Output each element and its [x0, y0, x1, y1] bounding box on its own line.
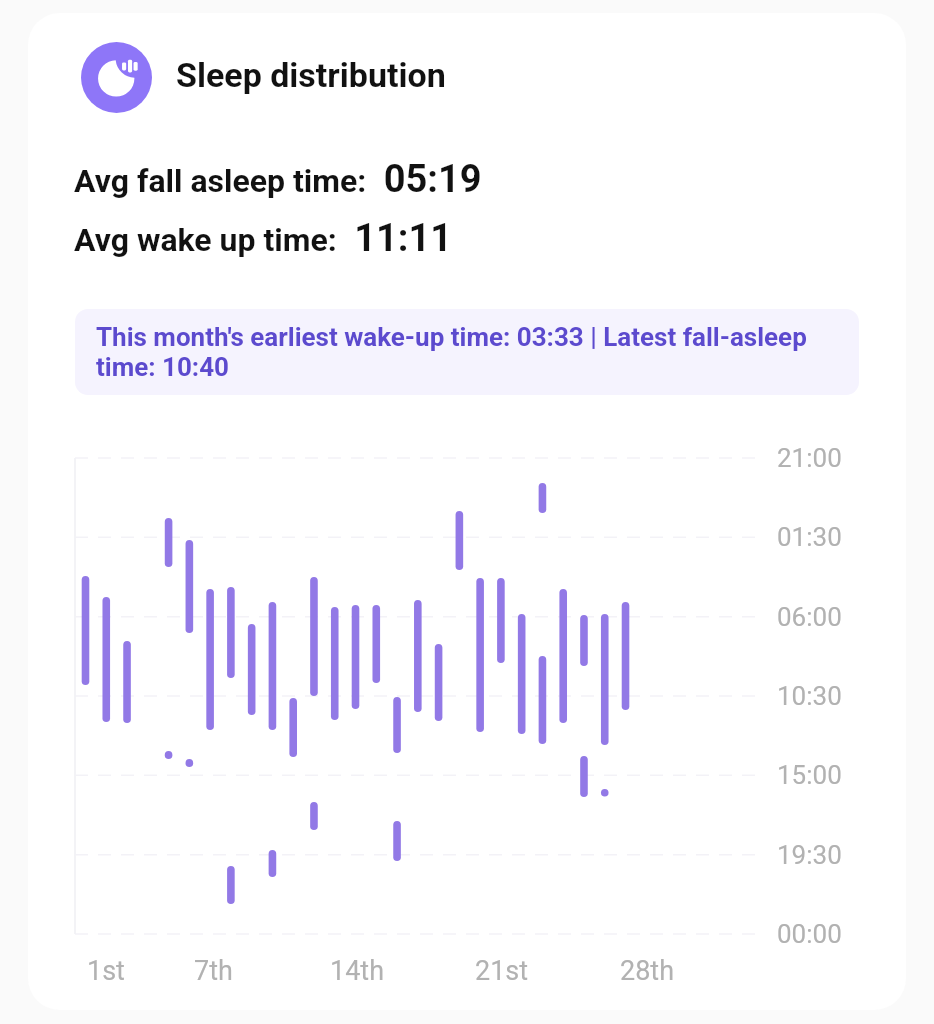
- button[interactable]: This month's earliest wake-up time: 03:3…: [75, 309, 859, 395]
- staticText: 00:00: [777, 919, 842, 949]
- staticText: 01:30: [777, 522, 842, 552]
- staticText: 21st: [475, 955, 529, 987]
- staticText: 7th: [194, 955, 233, 987]
- staticText: Sleep distribution: [176, 55, 446, 95]
- button[interactable]: Sleep: [81, 40, 449, 114]
- staticText: 21:00: [777, 443, 842, 473]
- staticText: 1st: [87, 955, 125, 987]
- staticText: 15:00: [777, 760, 842, 790]
- other: Sleep: [81, 42, 152, 113]
- staticText: 28th: [620, 955, 675, 987]
- staticText: Avg wake up time: 11:11: [74, 216, 453, 261]
- staticText: 19:30: [777, 840, 842, 870]
- staticText: 10:30: [777, 681, 842, 711]
- staticText: 14th: [330, 955, 385, 987]
- staticText: This month's earliest wake-up time: 03:3…: [96, 322, 838, 382]
- staticText: Avg fall asleep time: 05:19: [74, 157, 482, 202]
- staticText: 06:00: [777, 602, 842, 632]
